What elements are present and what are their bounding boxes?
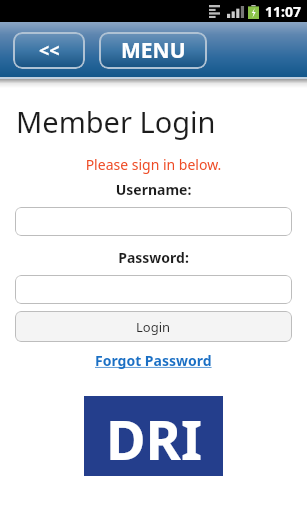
- button[interactable]: MENU: [99, 32, 207, 69]
- staticText: Login: [136, 318, 171, 336]
- staticText: 11:07: [265, 2, 301, 21]
- button[interactable]: Login: [15, 311, 292, 342]
- button[interactable]: [15, 207, 292, 236]
- staticText: MENU: [121, 36, 186, 65]
- staticText: Username:: [0, 180, 307, 199]
- button[interactable]: Back: [13, 32, 85, 69]
- staticText: Password:: [0, 248, 307, 267]
- staticText: Please sign in below.: [0, 155, 307, 174]
- button[interactable]: Forgot Password: [0, 351, 307, 370]
- staticText: DRI: [106, 402, 202, 476]
- staticText: <<: [39, 38, 60, 63]
- button[interactable]: [15, 275, 292, 304]
- staticText: Forgot Password: [95, 351, 212, 370]
- staticText: Member Login: [16, 102, 216, 141]
